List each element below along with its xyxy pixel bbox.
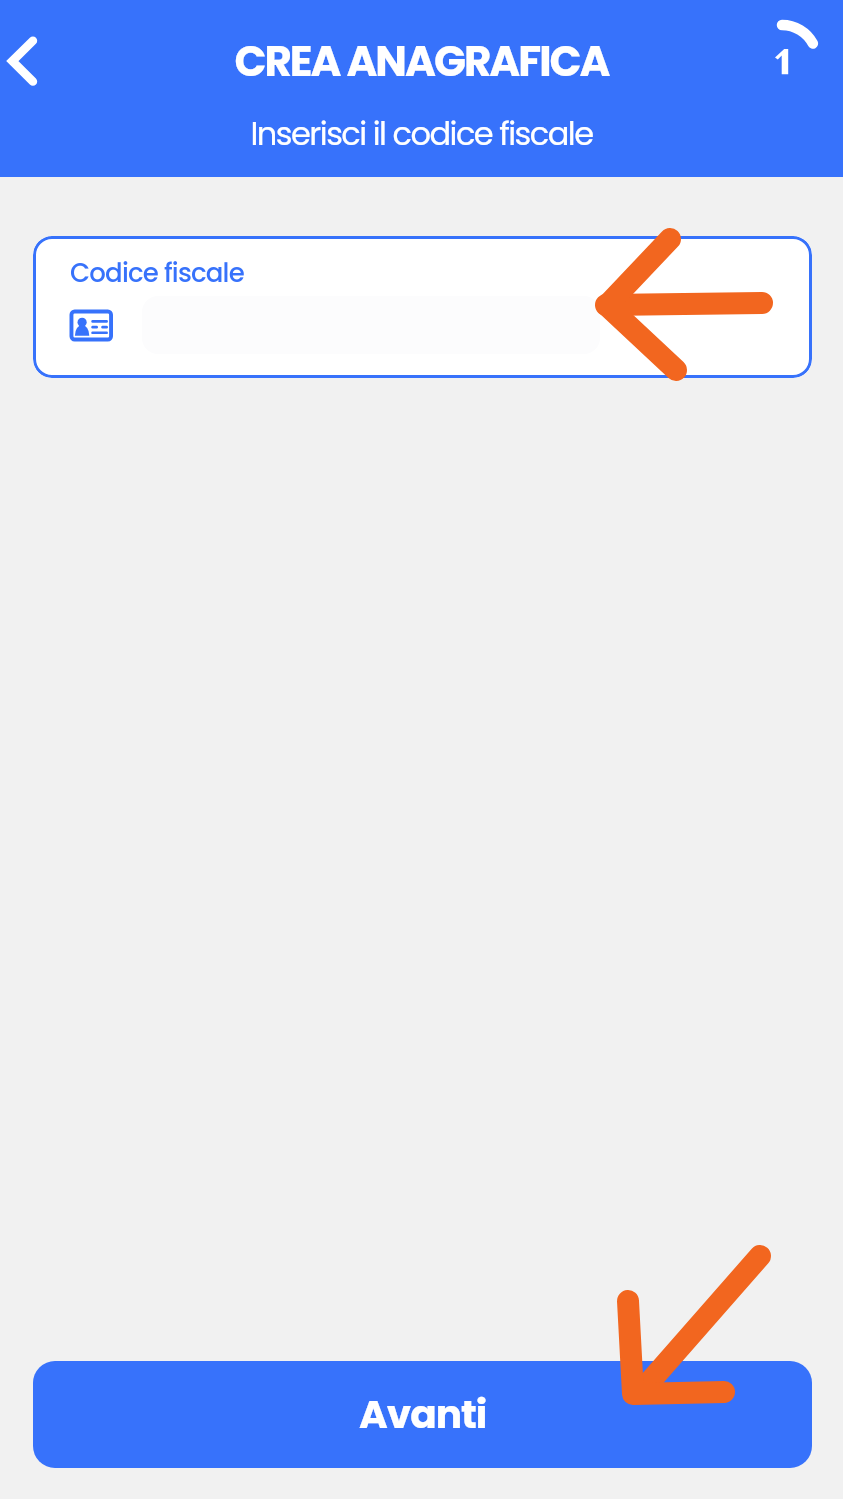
staticText: Inserisci il codice fiscale [0,111,843,156]
staticText: CREA ANAGRAFICA [0,32,843,91]
button[interactable]: Back [0,0,70,122]
button[interactable]: Codice fiscale [33,236,812,378]
staticText: Avanti [359,1387,487,1442]
button[interactable]: Step 1 of 5 [712,0,843,120]
staticText: Codice fiscale [70,255,244,291]
button[interactable]: Avanti [33,1361,812,1468]
